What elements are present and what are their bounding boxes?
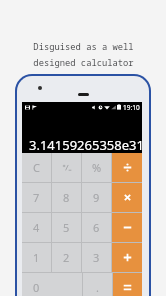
button[interactable]: 4 xyxy=(22,213,51,242)
button[interactable] xyxy=(52,153,81,182)
button[interactable]: 2 xyxy=(52,243,81,272)
staticText: 3.14159265358e31 xyxy=(29,136,142,153)
staticText: 2 xyxy=(63,250,70,265)
staticText: 3 xyxy=(93,250,100,265)
button[interactable]: 0 xyxy=(22,273,82,296)
staticText: designed calculator xyxy=(33,57,134,69)
button[interactable]: 5 xyxy=(52,213,81,242)
staticText: . xyxy=(96,280,99,295)
staticText: C xyxy=(33,160,40,175)
button[interactable]: Add xyxy=(112,243,142,272)
button[interactable]: 1 xyxy=(22,243,51,272)
staticText: % xyxy=(92,160,102,175)
staticText: 0 xyxy=(33,280,40,295)
button[interactable]: 9 xyxy=(82,183,111,212)
staticText: 5 xyxy=(63,220,70,235)
button[interactable]: C xyxy=(22,153,51,182)
staticText: 19:10 xyxy=(123,103,140,112)
staticText: 8 xyxy=(63,190,70,205)
button[interactable]: % xyxy=(82,153,111,182)
staticText: 4 xyxy=(33,220,40,235)
button[interactable]: Divide xyxy=(112,153,142,182)
button[interactable]: 6 xyxy=(82,213,111,242)
button[interactable]: Subtract xyxy=(112,213,142,242)
button[interactable]: Multiply xyxy=(112,183,142,212)
staticText: 6 xyxy=(93,220,100,235)
staticText: 1 xyxy=(33,250,40,265)
button[interactable]: 8 xyxy=(52,183,81,212)
button[interactable]: 3 xyxy=(82,243,111,272)
staticText: 7 xyxy=(33,190,40,205)
button[interactable]: 7 xyxy=(22,183,51,212)
staticText: 9 xyxy=(93,190,100,205)
staticText: Disguised as a well xyxy=(33,41,134,53)
button[interactable]: Equals xyxy=(113,273,142,296)
